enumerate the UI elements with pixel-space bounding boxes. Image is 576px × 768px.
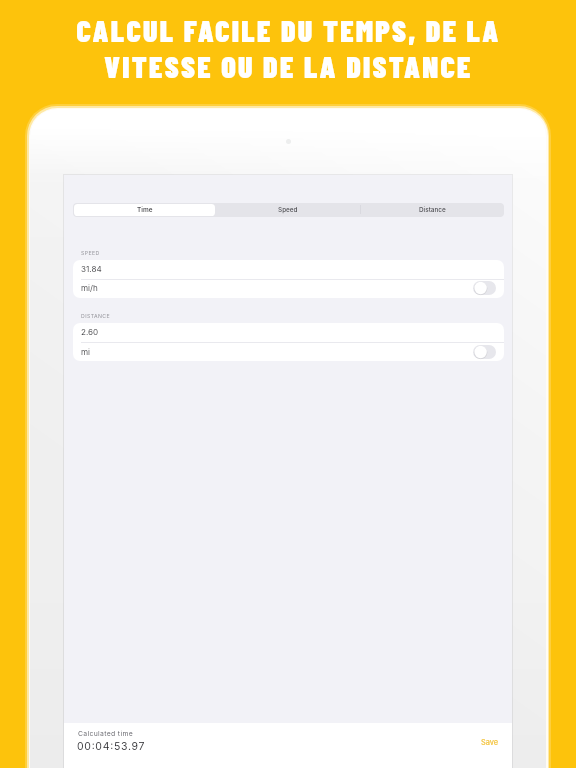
staticText: 31.84	[81, 264, 102, 274]
staticText: Speed	[278, 206, 298, 214]
staticText: DISTANCE	[81, 313, 110, 319]
staticText: CALCUL FACILE DU TEMPS, DE LA VITESSE OU…	[76, 12, 501, 84]
button[interactable]: Distance	[361, 204, 503, 216]
button[interactable]: mi	[73, 342, 504, 361]
staticText: 00:04:53.97	[77, 740, 146, 753]
staticText: 2.60	[81, 327, 99, 337]
button[interactable]: Toggle unit	[473, 281, 496, 295]
staticText: Distance	[419, 206, 446, 214]
button[interactable]: Speed	[217, 204, 359, 216]
button[interactable]: Time	[74, 204, 215, 216]
staticText: mi	[81, 347, 91, 357]
button[interactable]: Save	[477, 735, 503, 750]
button[interactable]: Toggle unit	[473, 345, 496, 359]
staticText: Calculated time	[78, 729, 134, 737]
staticText: Time	[137, 206, 153, 214]
button[interactable]: mi/h	[73, 279, 504, 297]
button[interactable]: 31.84	[73, 260, 504, 279]
staticText: mi/h	[81, 283, 98, 293]
staticText: Save	[481, 738, 499, 747]
button[interactable]: 2.60	[73, 323, 504, 342]
staticText: SPEED	[81, 250, 100, 256]
